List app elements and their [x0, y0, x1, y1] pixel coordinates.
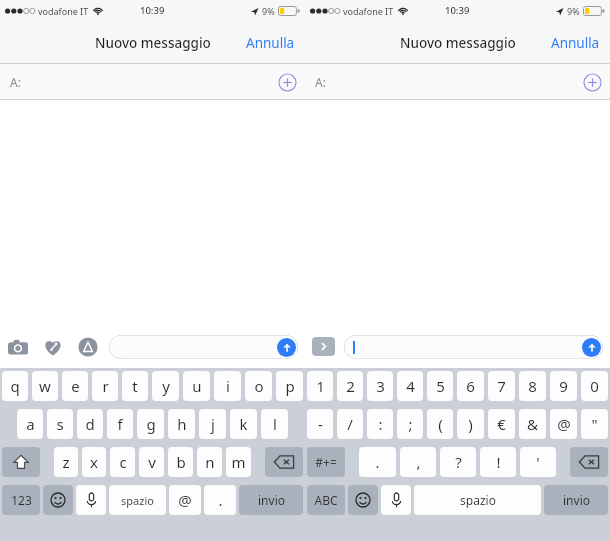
button[interactable]: ! — [480, 447, 516, 477]
button[interactable]: Backspace — [570, 447, 608, 477]
button[interactable]: 1 — [307, 371, 333, 401]
staticText: 0 — [590, 376, 599, 396]
staticText: Annulla — [246, 34, 295, 52]
button[interactable]: Add contact — [583, 73, 602, 92]
button[interactable]: t — [122, 371, 148, 401]
button[interactable]: Send — [582, 338, 601, 357]
button[interactable]: #+= — [307, 447, 345, 477]
staticText: @ — [557, 414, 571, 434]
button[interactable]: Send — [344, 335, 603, 359]
button[interactable]: @ — [550, 409, 577, 439]
button[interactable]: . — [359, 447, 396, 477]
staticText: z — [62, 452, 70, 472]
button[interactable]: Shift — [2, 447, 40, 477]
button[interactable]: 7 — [488, 371, 515, 401]
button[interactable]: spazio — [414, 485, 541, 515]
button[interactable]: c — [110, 447, 135, 477]
button[interactable]: ? — [440, 447, 476, 477]
button[interactable]: z — [54, 447, 78, 477]
button[interactable]: 2 — [337, 371, 363, 401]
button[interactable]: Emoji — [348, 485, 378, 515]
button[interactable]: b — [168, 447, 193, 477]
button[interactable]: 5 — [427, 371, 453, 401]
button[interactable]: 0 — [581, 371, 608, 401]
button[interactable]: e — [62, 371, 88, 401]
button[interactable]: - — [307, 409, 333, 439]
button[interactable]: a — [17, 409, 43, 439]
button[interactable]: Dictate — [76, 485, 106, 515]
button[interactable]: y — [152, 371, 179, 401]
button[interactable]: ' — [520, 447, 556, 477]
staticText: ; — [408, 414, 413, 434]
button[interactable]: g — [137, 409, 164, 439]
button[interactable]: Backspace — [265, 447, 303, 477]
staticText: q — [10, 376, 20, 396]
button[interactable]: q — [2, 371, 28, 401]
button[interactable]: invio — [239, 485, 303, 515]
button[interactable]: Annulla — [541, 26, 610, 60]
button[interactable]: h — [168, 409, 195, 439]
button[interactable]: x — [82, 447, 106, 477]
button[interactable]: Emoji — [43, 485, 73, 515]
button[interactable]: i — [214, 371, 241, 401]
button[interactable]: 6 — [457, 371, 484, 401]
button[interactable]: s — [47, 409, 73, 439]
staticText: A: — [315, 74, 326, 90]
button[interactable]: & — [519, 409, 546, 439]
button[interactable]: € — [488, 409, 515, 439]
staticText: l — [273, 414, 277, 434]
button[interactable]: j — [199, 409, 226, 439]
button[interactable]: d — [77, 409, 103, 439]
button[interactable]: k — [230, 409, 257, 439]
button[interactable]: App Store — [77, 336, 99, 358]
button[interactable]: p — [276, 371, 303, 401]
button[interactable]: r — [92, 371, 118, 401]
button[interactable]: n — [197, 447, 222, 477]
staticText: ) — [468, 414, 473, 434]
button[interactable]: Camera — [7, 336, 29, 358]
staticText: ( — [438, 414, 443, 434]
button[interactable]: " — [581, 409, 608, 439]
staticText: / — [347, 414, 353, 434]
staticText: t — [132, 376, 138, 396]
staticText: s — [56, 414, 64, 434]
button[interactable]: Dictate — [381, 485, 411, 515]
button[interactable]: invio — [544, 485, 608, 515]
button[interactable]: o — [245, 371, 272, 401]
staticText: d — [85, 414, 95, 434]
button[interactable]: , — [400, 447, 436, 477]
staticText: n — [205, 452, 215, 472]
button[interactable]: 9 — [550, 371, 577, 401]
button[interactable]: 123 — [2, 485, 40, 515]
button[interactable]: ; — [397, 409, 423, 439]
staticText: & — [527, 414, 538, 434]
button[interactable]: 4 — [397, 371, 423, 401]
button[interactable]: 3 — [367, 371, 393, 401]
staticText: 6 — [466, 376, 475, 396]
button[interactable]: Annulla — [236, 26, 305, 60]
staticText: o — [254, 376, 264, 396]
button[interactable]: v — [139, 447, 164, 477]
button[interactable]: Add contact — [278, 73, 297, 92]
button[interactable]: f — [107, 409, 133, 439]
button[interactable]: ABC — [307, 485, 345, 515]
button[interactable]: Digital Touch — [42, 336, 64, 358]
button[interactable]: w — [32, 371, 58, 401]
button[interactable]: ( — [427, 409, 453, 439]
button[interactable]: m — [226, 447, 251, 477]
button[interactable]: : — [367, 409, 393, 439]
button[interactable]: u — [183, 371, 210, 401]
button[interactable]: l — [261, 409, 288, 439]
button[interactable]: . — [204, 485, 236, 515]
button[interactable]: 8 — [519, 371, 546, 401]
button[interactable]: / — [337, 409, 363, 439]
staticText: 8 — [528, 376, 537, 396]
button[interactable]: Send — [109, 335, 298, 359]
button[interactable]: ) — [457, 409, 484, 439]
button[interactable]: @ — [169, 485, 201, 515]
staticText: 123 — [11, 492, 32, 508]
staticText: 9 — [559, 376, 568, 396]
button[interactable]: spazio — [109, 485, 166, 515]
button[interactable]: Show apps — [312, 337, 335, 356]
button[interactable]: Send — [277, 338, 296, 357]
